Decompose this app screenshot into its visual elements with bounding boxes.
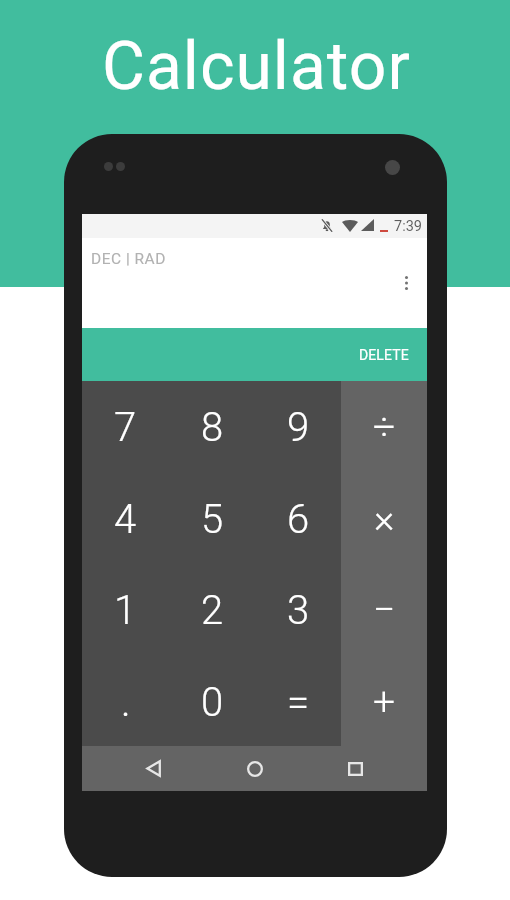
button[interactable]: ÷ <box>341 381 427 473</box>
button[interactable]: 2 <box>169 564 255 656</box>
staticText: 7 <box>114 404 137 451</box>
staticText: 3 <box>287 587 310 634</box>
staticText: 6 <box>287 496 310 543</box>
button[interactable]: . <box>82 656 169 748</box>
staticText: = <box>287 679 310 726</box>
button[interactable]: 8 <box>169 381 255 473</box>
staticText: . <box>121 679 131 726</box>
staticText: 9 <box>287 404 310 451</box>
button[interactable]: DELETE <box>82 328 427 381</box>
button[interactable]: 7 <box>82 381 169 473</box>
staticText: 1 <box>114 587 137 634</box>
staticText: 7:39 <box>394 218 422 235</box>
staticText: Calculator <box>102 28 411 105</box>
button[interactable]: Recent apps <box>335 746 375 791</box>
button[interactable]: − <box>341 564 427 656</box>
button[interactable]: 3 <box>255 564 341 656</box>
button[interactable]: 0 <box>169 656 255 748</box>
button[interactable]: 6 <box>255 473 341 565</box>
staticText: 0 <box>201 679 224 726</box>
staticText: 5 <box>201 496 224 543</box>
button[interactable]: 9 <box>255 381 341 473</box>
staticText: DELETE <box>359 347 409 363</box>
button[interactable]: More options <box>392 269 420 297</box>
button[interactable]: 5 <box>169 473 255 565</box>
button[interactable]: Back <box>133 746 173 791</box>
staticText: 8 <box>201 404 224 451</box>
button[interactable]: = <box>255 656 341 748</box>
button[interactable]: 4 <box>82 473 169 565</box>
staticText: × <box>374 496 395 542</box>
button[interactable]: × <box>341 473 427 565</box>
staticText: DEC | RAD <box>91 250 166 268</box>
button[interactable]: + <box>341 656 427 748</box>
staticText: 2 <box>201 587 224 634</box>
staticText: − <box>373 587 396 633</box>
staticText: + <box>373 679 396 725</box>
staticText: 4 <box>114 496 137 543</box>
button[interactable]: 1 <box>82 564 169 656</box>
staticText: ÷ <box>373 404 396 450</box>
button[interactable]: Home <box>235 746 275 791</box>
